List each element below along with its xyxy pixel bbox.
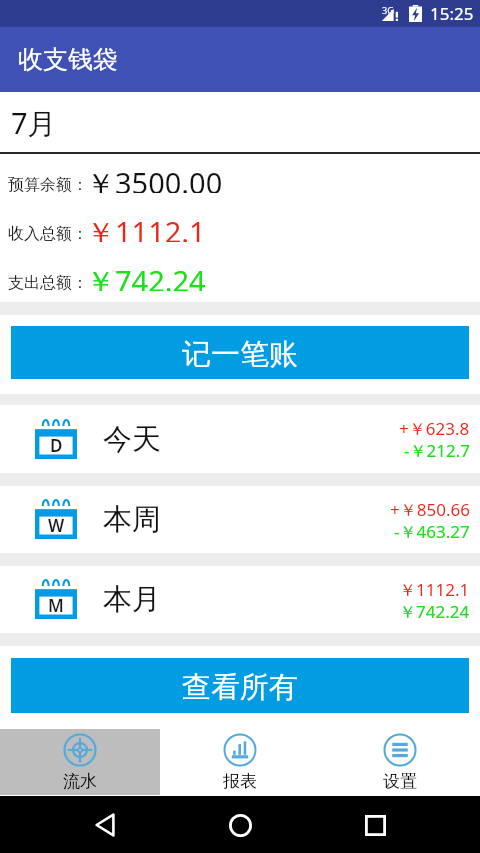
staticText: ￥1112.1: [86, 212, 206, 242]
staticText: 查看所有: [182, 669, 298, 706]
staticText: 收支钱袋: [18, 44, 118, 75]
staticText: +￥850.66: [390, 498, 470, 521]
staticText: D: [50, 434, 63, 457]
staticText: 预算余额：: [8, 175, 88, 195]
staticText: 15:25: [430, 2, 474, 25]
staticText: 报表: [223, 771, 257, 792]
button[interactable]: 查看所有: [11, 658, 469, 713]
staticText: ￥3500.00: [86, 163, 223, 193]
staticText: 本周: [103, 501, 161, 538]
button[interactable]: Recents: [353, 803, 397, 847]
staticText: 流水: [63, 771, 97, 792]
staticText: 收入总额：: [8, 224, 88, 244]
button[interactable]: 记一笔账: [11, 326, 469, 379]
staticText: ￥742.24: [399, 600, 470, 623]
button[interactable]: 报表: [160, 729, 320, 795]
staticText: W: [48, 514, 65, 537]
button[interactable]: 流水: [0, 729, 160, 795]
button[interactable]: Home: [218, 803, 262, 847]
button[interactable]: D: [0, 405, 480, 473]
button[interactable]: W: [0, 486, 480, 553]
button[interactable]: M: [0, 566, 480, 633]
staticText: ￥1112.1: [399, 578, 470, 601]
button[interactable]: 设置: [320, 729, 480, 795]
staticText: 设置: [383, 771, 417, 792]
staticText: 7月: [11, 103, 57, 143]
button[interactable]: Back: [83, 803, 127, 847]
staticText: ￥742.24: [86, 261, 206, 291]
staticText: +￥623.8: [399, 417, 470, 440]
staticText: -￥463.27: [394, 520, 470, 543]
staticText: 支出总额：: [8, 273, 88, 293]
staticText: -￥212.7: [404, 439, 470, 462]
staticText: M: [48, 594, 64, 617]
staticText: 3G: [382, 4, 394, 16]
staticText: 记一笔账: [182, 336, 298, 373]
staticText: 本月: [103, 581, 161, 618]
staticText: 今天: [103, 421, 161, 458]
